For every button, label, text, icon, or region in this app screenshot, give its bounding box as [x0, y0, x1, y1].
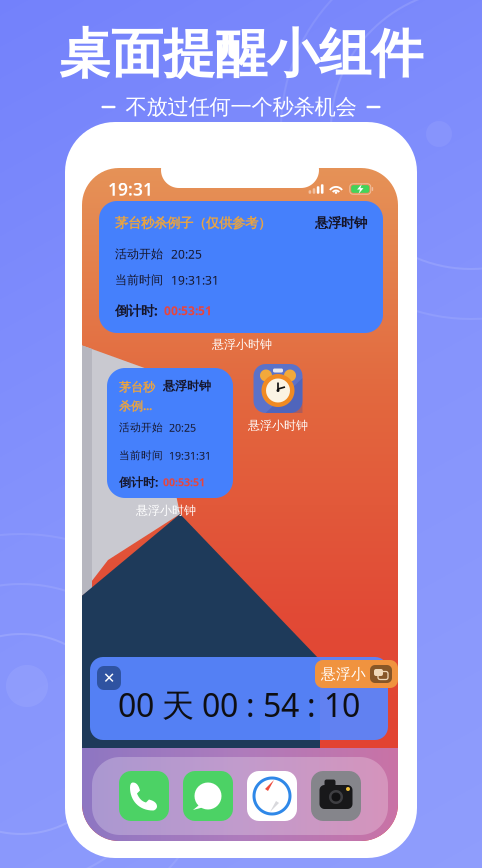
staticText: 20:25	[171, 246, 202, 262]
staticText: 悬浮小时钟	[248, 418, 308, 433]
staticText: 茅台秒	[119, 380, 155, 395]
staticText: 19:31:31	[169, 448, 211, 463]
staticText: 19:31	[108, 177, 153, 200]
staticText: 00 天 00 : 54 : 10	[118, 683, 360, 726]
staticText: 19:31:31	[171, 272, 219, 288]
staticText: ✕	[103, 670, 115, 686]
staticText: 悬浮小时钟	[136, 503, 196, 518]
button[interactable]: 茅台秒杀例子（仅供参考）	[99, 201, 383, 333]
staticText: 当前时间	[119, 449, 163, 462]
staticText: 桌面提醒小组件	[59, 22, 423, 86]
staticText: 杀例...	[119, 398, 152, 414]
staticText: 不放过任何一个秒杀机会	[125, 94, 356, 120]
button[interactable]: 悬浮小时钟	[239, 364, 317, 432]
staticText: 倒计时:	[119, 474, 158, 490]
staticText: 茅台秒杀例子（仅供参考）	[115, 215, 271, 231]
staticText: 悬浮小	[321, 665, 366, 683]
staticText: 悬浮小时钟	[212, 337, 272, 352]
staticText: 活动开始	[115, 247, 163, 261]
staticText: 20:25	[169, 420, 196, 435]
button[interactable]: 信息	[183, 771, 233, 821]
staticText: 活动开始	[119, 421, 163, 434]
button[interactable]: 电话	[119, 771, 169, 821]
staticText: 悬浮时钟	[163, 379, 211, 393]
staticText: 00:53:51	[163, 475, 205, 489]
button[interactable]: Safari	[247, 771, 297, 821]
button[interactable]: 悬浮小	[315, 660, 398, 688]
staticText: 00:53:51	[164, 302, 212, 318]
staticText: 当前时间	[115, 273, 163, 287]
staticText: 倒计时:	[115, 302, 158, 319]
staticText: 悬浮时钟	[315, 215, 367, 231]
button[interactable]: 茅台秒	[107, 368, 233, 498]
button[interactable]: 关闭	[97, 666, 121, 690]
button[interactable]: 相机	[311, 771, 361, 821]
